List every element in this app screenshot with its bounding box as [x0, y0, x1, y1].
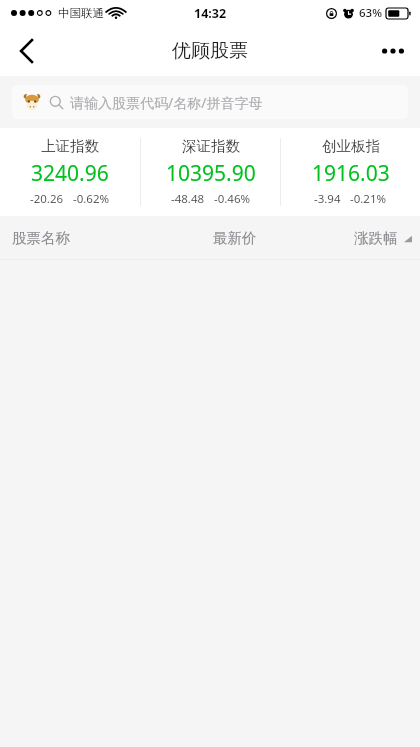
staticText: 10395.90	[166, 159, 256, 188]
staticText: -20.26	[30, 191, 64, 207]
staticText: 深证指数	[182, 137, 240, 155]
staticText: 中国联通	[58, 6, 104, 20]
staticText: -48.48	[171, 191, 205, 207]
button[interactable]: 请输入股票代码/名称/拼音字母	[12, 85, 408, 119]
staticText: 创业板指	[322, 137, 380, 155]
staticText: 14:32	[194, 5, 227, 22]
staticText: 1916.03	[312, 159, 390, 188]
button[interactable]: 深证指数	[141, 128, 280, 216]
button[interactable]: 创业板指	[281, 128, 420, 216]
button[interactable]: 涨跌幅	[354, 216, 412, 260]
staticText: -0.46%	[214, 191, 251, 207]
staticText: 股票名称	[12, 229, 70, 247]
staticText: 上证指数	[41, 137, 99, 155]
staticText: 3240.96	[31, 159, 109, 188]
staticText: -3.94	[314, 191, 341, 207]
button[interactable]: More options	[366, 26, 420, 76]
button[interactable]: 上证指数	[0, 128, 140, 216]
staticText: 最新价	[213, 229, 257, 247]
staticText: 涨跌幅	[354, 229, 398, 247]
staticText: -0.62%	[73, 191, 110, 207]
button[interactable]: Back	[0, 26, 52, 76]
staticText: 优顾股票	[172, 39, 248, 63]
staticText: 63%	[359, 5, 382, 21]
staticText: 请输入股票代码/名称/拼音字母	[70, 93, 263, 112]
staticText: -0.21%	[350, 191, 387, 207]
